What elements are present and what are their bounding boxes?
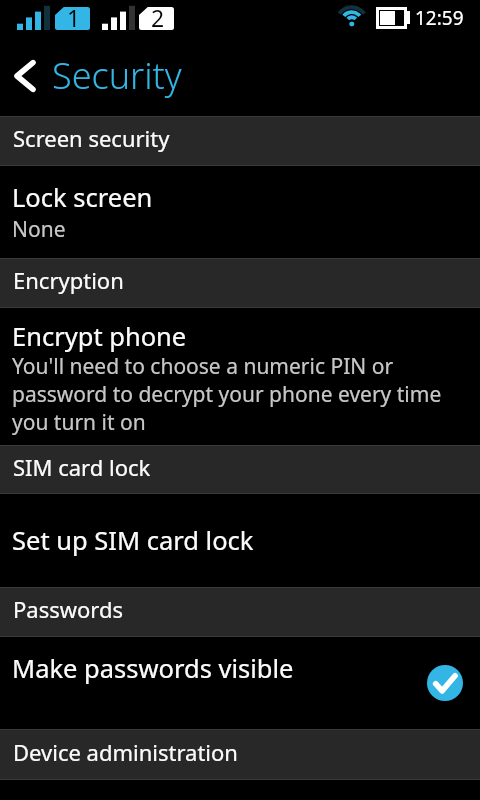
staticText: You'll need to choose a numeric PIN or p… [12, 352, 458, 436]
staticText: Encryption [13, 265, 124, 295]
staticText: None [12, 215, 66, 244]
button[interactable]: Set up SIM card lock [0, 494, 480, 587]
staticText: Security [52, 51, 182, 100]
staticText: Device administration [13, 737, 238, 767]
staticText: Lock screen [12, 180, 153, 215]
staticText: Encrypt phone [12, 319, 187, 354]
button[interactable]: Make passwords visible [0, 637, 480, 729]
button[interactable]: Encrypt phone [0, 308, 480, 445]
button[interactable]: Lock screen [0, 166, 480, 258]
staticText: Set up SIM card lock [12, 523, 254, 558]
button[interactable]: Navigate up [4, 52, 46, 98]
staticText: 1 [67, 2, 81, 33]
staticText: Make passwords visible [12, 651, 294, 686]
staticText: SIM card lock [13, 452, 151, 482]
staticText: Passwords [13, 594, 124, 624]
staticText: 2 [151, 2, 165, 33]
staticText: Screen security [13, 123, 170, 153]
staticText: 12:59 [415, 5, 464, 31]
